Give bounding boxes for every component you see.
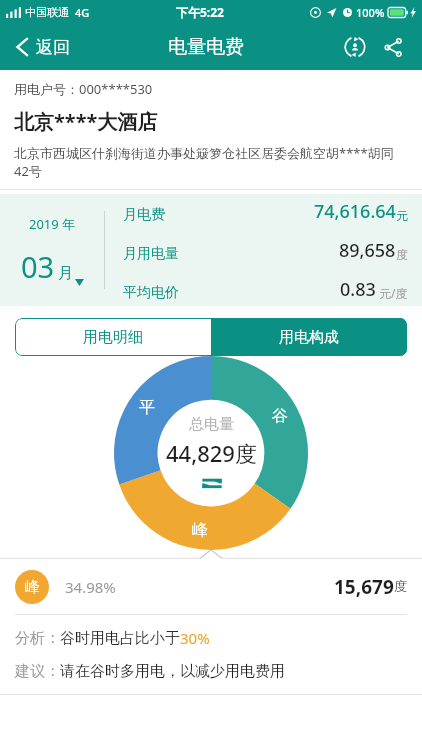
staticText: 北京****大酒店 bbox=[14, 108, 158, 135]
staticText: 元/度 bbox=[376, 285, 408, 301]
staticText: 用电构成 bbox=[279, 328, 339, 347]
staticText: 请在谷时多用电，以减少用电费用 bbox=[60, 662, 285, 681]
staticText: 4G bbox=[75, 5, 90, 20]
staticText: 0.83 bbox=[340, 277, 376, 302]
staticText: 34.98% bbox=[65, 577, 116, 597]
staticText: 月 bbox=[58, 264, 73, 283]
staticText: 元 bbox=[396, 208, 408, 223]
staticText: 峰 bbox=[192, 520, 208, 540]
button[interactable]: Share bbox=[378, 32, 408, 62]
staticText: 03 bbox=[21, 247, 55, 286]
staticText: 中国联通 bbox=[25, 5, 69, 19]
staticText: 度 bbox=[394, 578, 407, 594]
staticText: 北京市西城区什刹海街道办事处簸箩仓社区居委会航空胡****胡同42号 bbox=[14, 144, 408, 180]
staticText: 谷 bbox=[272, 406, 288, 426]
button[interactable]: Refresh bbox=[338, 30, 372, 64]
staticText: 平均电价 bbox=[123, 284, 179, 302]
button[interactable]: 返回 bbox=[10, 32, 74, 62]
button[interactable]: 用电构成 bbox=[211, 318, 407, 356]
staticText: 15,679 bbox=[334, 574, 394, 600]
staticText: 谷时用电占比小于 bbox=[60, 629, 180, 648]
staticText: 74,616.64 bbox=[314, 199, 396, 224]
staticText: 月电费 bbox=[123, 206, 165, 224]
staticText: 建议： bbox=[15, 662, 60, 681]
staticText: 分析： bbox=[15, 629, 60, 648]
button[interactable]: 峰 bbox=[0, 559, 422, 614]
staticText: 返回 bbox=[36, 37, 70, 58]
staticText: 89,658 bbox=[339, 238, 396, 263]
staticText: 用电明细 bbox=[83, 328, 143, 347]
staticText: 度 bbox=[396, 247, 408, 262]
button[interactable]: 用电明细 bbox=[15, 318, 211, 356]
staticText: 44,829度 bbox=[166, 438, 257, 468]
staticText: 电量电费 bbox=[168, 35, 244, 59]
staticText: 用电户号：000****530 bbox=[14, 80, 153, 98]
staticText: 2019 年 bbox=[29, 215, 76, 233]
staticText: 月用电量 bbox=[123, 245, 179, 263]
staticText: 30% bbox=[180, 628, 210, 648]
staticText: 下午5:22 bbox=[176, 4, 224, 20]
button[interactable]: Switch view bbox=[199, 474, 225, 492]
staticText: 峰 bbox=[25, 578, 40, 597]
staticText: 100% bbox=[356, 5, 385, 20]
staticText: 总电量 bbox=[189, 415, 234, 434]
staticText: 平 bbox=[139, 398, 155, 418]
button[interactable]: 2019 年 bbox=[0, 215, 104, 286]
